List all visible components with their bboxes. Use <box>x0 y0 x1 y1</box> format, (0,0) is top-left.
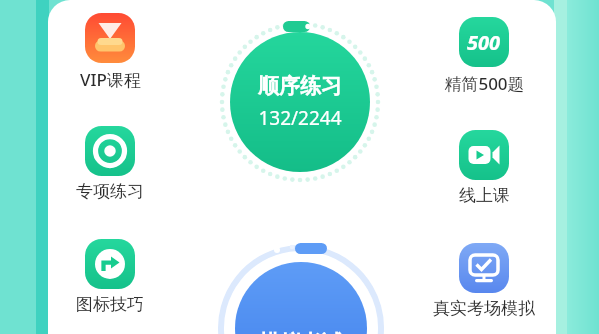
button[interactable]: 图标技巧 <box>45 235 175 323</box>
staticText: 500 <box>467 29 501 56</box>
button[interactable]: VIP课程 <box>45 9 175 97</box>
button[interactable]: 顺序练习 <box>214 16 386 188</box>
staticText: 132/2244 <box>258 105 342 131</box>
staticText: 专项练习 <box>76 181 144 202</box>
staticText: 真实考场模拟 <box>433 298 535 319</box>
button[interactable]: 模拟考试 <box>216 243 386 334</box>
button[interactable]: 500 <box>419 13 549 101</box>
staticText: 图标技巧 <box>76 294 144 315</box>
staticText: 线上课 <box>459 185 510 206</box>
staticText: 模拟考试 <box>259 330 343 334</box>
button[interactable]: 线上课 <box>419 126 549 214</box>
button[interactable]: 专项练习 <box>45 122 175 210</box>
staticText: 精简500题 <box>444 72 525 95</box>
staticText: 顺序练习 <box>258 73 342 99</box>
staticText: VIP课程 <box>80 68 141 91</box>
button[interactable]: 真实考场模拟 <box>419 239 549 327</box>
